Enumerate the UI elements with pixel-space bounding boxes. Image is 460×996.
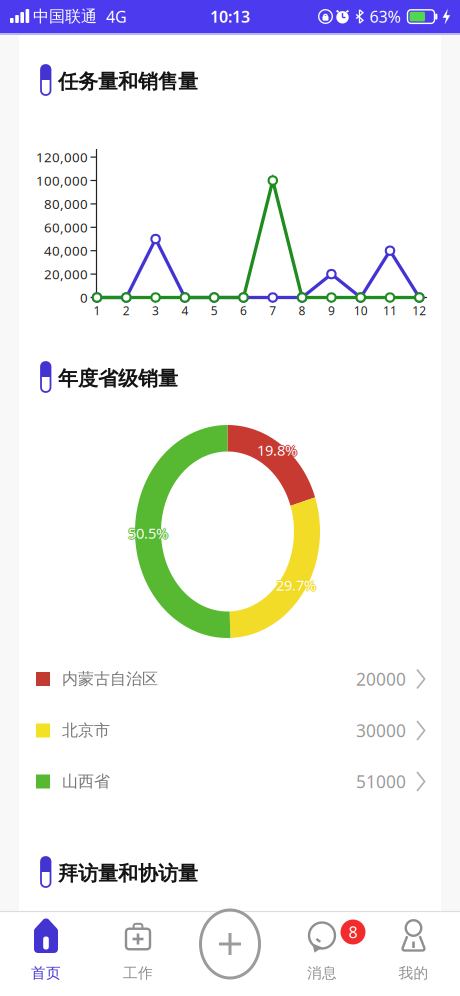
staticText: 29.7% <box>276 574 316 594</box>
staticText: 63% <box>369 6 400 27</box>
staticText: 消息 <box>307 964 337 982</box>
staticText: 9 <box>328 302 335 318</box>
staticText: 首页 <box>31 964 61 982</box>
staticText: 19.8% <box>256 440 296 460</box>
staticText: 80,000 <box>44 195 88 213</box>
staticText: 50.5% <box>128 522 168 542</box>
staticText: 山西省 <box>62 772 110 791</box>
staticText: 3 <box>152 302 159 318</box>
staticText: 29.7% <box>276 576 316 596</box>
staticText: 100,000 <box>36 172 88 189</box>
staticText: 0 <box>80 289 88 306</box>
staticText: 中国联通 <box>33 7 97 26</box>
staticText: 19.8% <box>257 439 297 459</box>
staticText: 7 <box>269 302 276 318</box>
button[interactable]: 我的 <box>376 912 452 996</box>
staticText: 60,000 <box>44 218 88 236</box>
staticText: 内蒙古自治区 <box>62 669 158 689</box>
staticText: 1 <box>93 302 100 318</box>
staticText: 拜访量和协访量 <box>58 861 198 886</box>
staticText: 12 <box>412 302 426 318</box>
button[interactable]: 山西省 <box>36 756 426 806</box>
staticText: 8 <box>299 302 306 318</box>
staticText: 40,000 <box>44 242 88 259</box>
staticText: 4 <box>181 302 188 318</box>
staticText: 29.7% <box>277 575 317 595</box>
staticText: 19.8% <box>257 440 297 460</box>
staticText: 29.7% <box>276 575 316 595</box>
staticText: 6 <box>240 302 247 318</box>
staticText: 50.5% <box>127 523 167 543</box>
button[interactable]: 工作 <box>100 912 176 996</box>
button[interactable]: 北京市 <box>36 705 426 755</box>
staticText: 5 <box>211 302 218 318</box>
staticText: 20000 <box>356 667 406 690</box>
staticText: 11 <box>383 302 397 318</box>
staticText: 51000 <box>356 770 406 793</box>
staticText: 2 <box>123 302 130 318</box>
button[interactable]: 8 <box>284 912 360 996</box>
staticText: 19.8% <box>258 440 298 460</box>
staticText: 29.7% <box>275 575 315 595</box>
staticText: 120,000 <box>36 148 88 166</box>
button[interactable]: 内蒙古自治区 <box>36 654 426 704</box>
staticText: 工作 <box>123 964 153 982</box>
staticText: 50.5% <box>129 523 169 543</box>
staticText: 50.5% <box>128 524 168 544</box>
staticText: 19.8% <box>257 441 297 461</box>
staticText: 8 <box>348 921 357 943</box>
staticText: 我的 <box>398 964 428 982</box>
staticText: 10 <box>354 302 368 318</box>
staticText: 20,000 <box>44 265 88 283</box>
staticText: 50.5% <box>128 523 168 543</box>
button[interactable]: 新建 <box>192 912 268 996</box>
staticText: 北京市 <box>62 721 110 740</box>
staticText: 任务量和销售量 <box>58 69 198 94</box>
button[interactable]: 首页 <box>8 912 84 996</box>
staticText: 30000 <box>356 719 406 742</box>
staticText: 4G <box>106 6 127 27</box>
staticText: 10:13 <box>210 6 250 27</box>
staticText: 年度省级销量 <box>58 366 178 391</box>
